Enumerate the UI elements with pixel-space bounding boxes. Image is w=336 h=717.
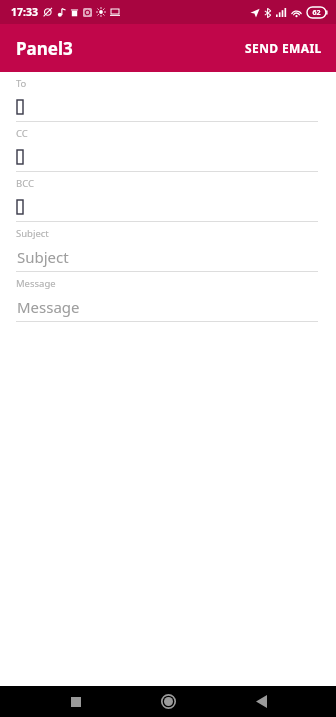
staticText: 17:33 <box>11 5 38 19</box>
button[interactable]: Back <box>246 686 277 717</box>
staticText: Subject <box>17 247 69 267</box>
button[interactable]: Subject <box>0 222 336 272</box>
button[interactable]: Home <box>153 686 184 717</box>
button[interactable]: CC <box>0 122 336 172</box>
staticText: Message <box>16 277 56 290</box>
button[interactable]: SEND EMAIL <box>231 24 336 72</box>
staticText: 62 <box>312 8 321 18</box>
staticText: BCC <box>16 177 34 190</box>
button[interactable]: Message <box>0 272 336 322</box>
staticText: SEND EMAIL <box>245 40 322 56</box>
staticText: Subject <box>16 227 49 240</box>
staticText: Message <box>17 297 80 317</box>
button[interactable]: Recent apps <box>60 686 91 717</box>
staticText: CC <box>16 127 28 140</box>
button[interactable]: BCC <box>0 172 336 222</box>
button[interactable]: To <box>0 72 336 122</box>
staticText: Panel3 <box>16 37 73 60</box>
staticText: To <box>16 77 27 90</box>
